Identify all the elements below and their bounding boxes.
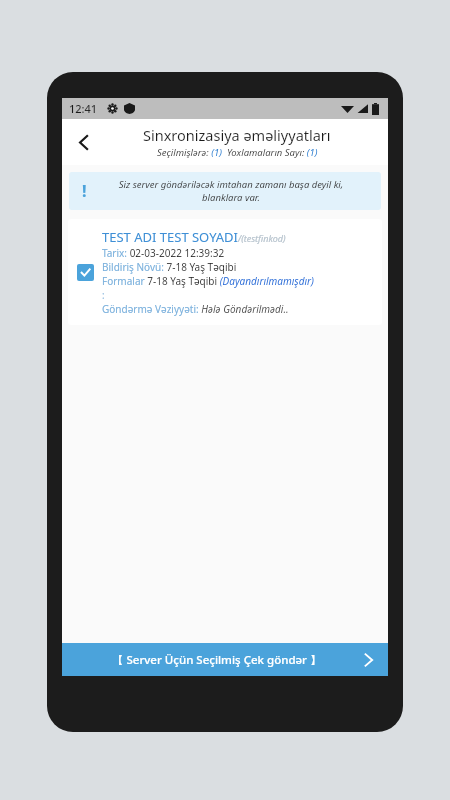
staticText: Tarix: 02-03-2022 12:39:32 [102, 246, 225, 260]
staticText: 【 Server Üçün Seçilmiş Çek göndər 】 [112, 652, 322, 668]
button[interactable]: Back [62, 120, 106, 164]
staticText: ! [82, 180, 87, 202]
staticText: Sinxronizasiya əməliyyatları [143, 125, 331, 145]
button[interactable]: ! [69, 172, 381, 210]
staticText: 12:41 [69, 101, 98, 116]
staticText: Göndərmə Vəziyyəti: Hələ Göndərilmədi.. [102, 302, 289, 316]
staticText: : [102, 288, 105, 302]
button[interactable]: Selected [77, 264, 94, 281]
staticText: Siz server göndəriləcək imtahan zamanı b… [99, 178, 363, 204]
button[interactable]: 【 Server Üçün Seçilmiş Çek göndər 】 [62, 643, 388, 676]
staticText: Seçilmişlərə: (1) Yoxlamaların Sayı: (1) [157, 146, 318, 159]
staticText: TEST ADI TEST SOYADI/(testfinkod) [102, 228, 286, 246]
staticText: Bildiriş Növü: 7-18 Yaş Təqibi [102, 260, 237, 274]
button[interactable]: Selected [68, 219, 382, 325]
staticText: Formalar 7-18 Yaş Təqibi (Dayandırılmamı… [102, 274, 314, 288]
